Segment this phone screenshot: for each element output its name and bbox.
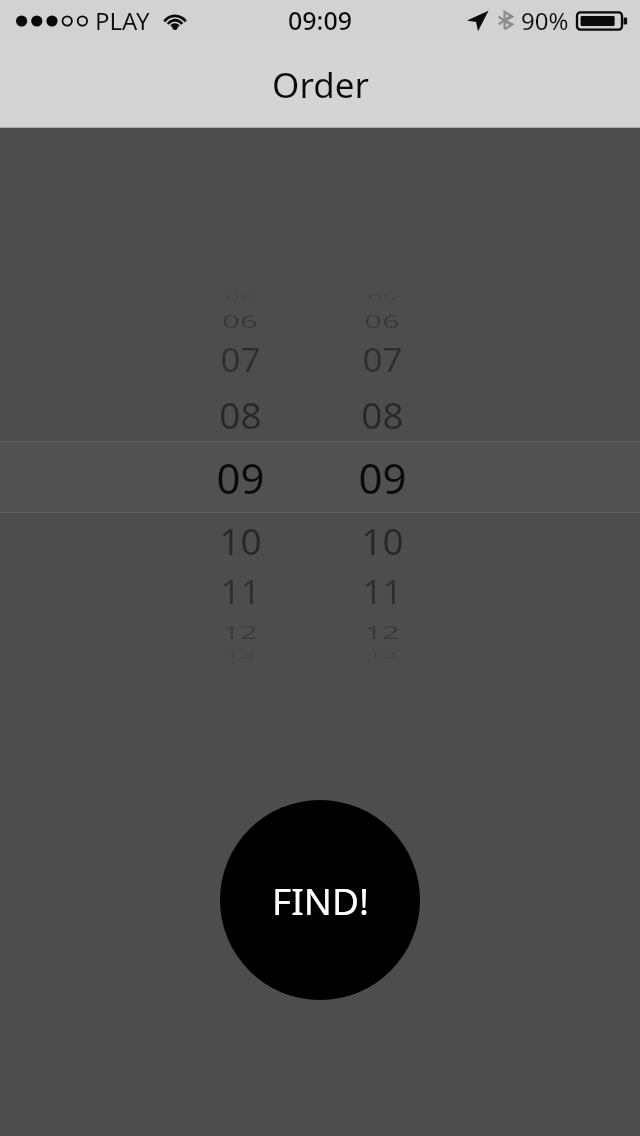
staticText: 12 bbox=[364, 619, 400, 645]
staticText: 08 bbox=[219, 389, 262, 439]
staticText: 07 bbox=[362, 338, 403, 382]
staticText: 11 bbox=[220, 570, 261, 614]
staticText: 09 bbox=[358, 449, 407, 506]
button[interactable]: Minute, 09 bbox=[302, 128, 462, 1136]
staticText: Order bbox=[272, 61, 369, 109]
button[interactable]: FIND! bbox=[220, 800, 420, 1000]
staticText: 09 bbox=[216, 449, 265, 506]
staticText: 06 bbox=[364, 308, 400, 334]
staticText: 90% bbox=[521, 4, 569, 37]
staticText: 09:09 bbox=[288, 3, 353, 37]
staticText: 10 bbox=[219, 515, 262, 565]
staticText: 12 bbox=[222, 619, 258, 645]
staticText: PLAY bbox=[95, 4, 150, 37]
staticText: 07 bbox=[220, 338, 261, 382]
staticText: 06 bbox=[222, 308, 258, 334]
staticText: 11 bbox=[362, 570, 403, 614]
button[interactable]: Hour, 09 bbox=[160, 128, 320, 1136]
staticText: 08 bbox=[361, 389, 404, 439]
staticText: FIND! bbox=[272, 875, 369, 925]
staticText: 10 bbox=[361, 515, 404, 565]
